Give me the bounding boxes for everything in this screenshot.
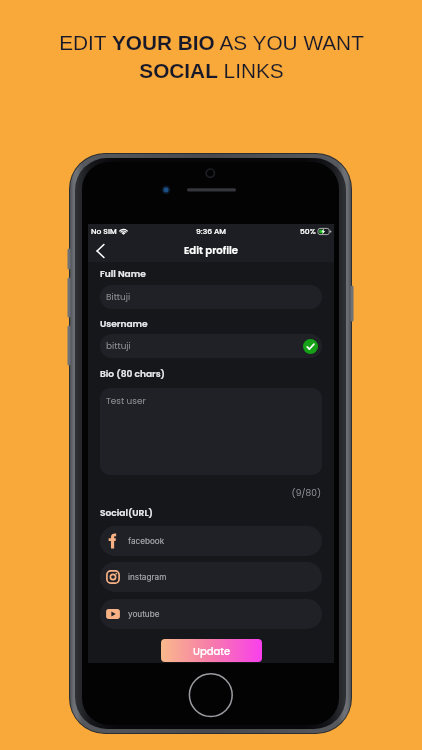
button[interactable]: facebook — [100, 526, 322, 556]
staticText: bittuji — [106, 340, 131, 352]
button[interactable]: Bittuji — [100, 285, 322, 309]
staticText: Social(URL) — [100, 506, 153, 519]
button[interactable]: bittuji — [100, 334, 322, 358]
staticText: (9/80) — [101, 487, 321, 500]
staticText: Edit profile — [184, 243, 239, 257]
staticText: facebook — [128, 536, 165, 546]
staticText: Bio (80 chars) — [100, 367, 165, 380]
button[interactable]: Test user — [100, 388, 322, 475]
staticText: Username — [100, 317, 148, 330]
staticText: Test user — [106, 395, 146, 407]
staticText: 9:36 AM — [196, 226, 227, 237]
staticText: youtube — [128, 609, 160, 619]
button[interactable]: Back — [88, 240, 112, 261]
staticText: Full Name — [100, 267, 146, 280]
staticText: EDIT YOUR BIO AS YOU WANT SOCIAL LINKS — [59, 31, 364, 82]
staticText: Bittuji — [106, 291, 131, 303]
staticText: instagram — [128, 572, 167, 582]
staticText: Update — [193, 644, 231, 658]
button[interactable]: Update — [161, 639, 262, 662]
staticText: No SIM — [91, 226, 117, 237]
button[interactable]: youtube — [100, 599, 322, 629]
staticText: 50% — [300, 226, 316, 237]
button[interactable]: instagram — [100, 562, 322, 592]
